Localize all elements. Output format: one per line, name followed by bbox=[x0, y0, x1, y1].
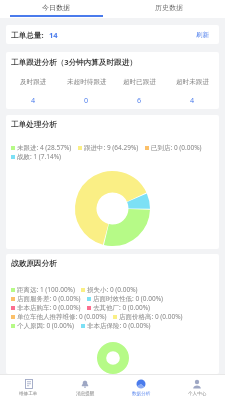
staticText: 个人原因: 0 (0.00%) bbox=[17, 321, 75, 330]
staticText: 战败: 1 (7.14%) bbox=[17, 152, 62, 161]
staticText: 工单跟进分析（3分钟内算及时跟进） bbox=[11, 57, 137, 67]
staticText: 14 bbox=[49, 30, 58, 40]
staticText: 0 bbox=[84, 95, 89, 105]
button[interactable]: 个人中心 bbox=[169, 375, 225, 400]
staticText: 工单处理分析 bbox=[11, 120, 57, 130]
staticText: 已到店: 0 (0.00%) bbox=[151, 143, 202, 152]
staticText: 个人中心 bbox=[188, 391, 207, 397]
staticText: 及时跟进 bbox=[20, 78, 47, 86]
staticText: 数据分析 bbox=[132, 391, 151, 397]
button[interactable]: 消息提醒 bbox=[57, 375, 113, 400]
button[interactable]: 今日数据 bbox=[0, 0, 112, 18]
staticText: 消息提醒 bbox=[76, 391, 95, 397]
staticText: 店面服务差: 0 (0.00%) bbox=[17, 294, 81, 303]
staticText: 4 bbox=[31, 95, 36, 105]
staticText: 维修工单 bbox=[19, 391, 38, 397]
staticText: 历史数据 bbox=[155, 3, 183, 12]
button[interactable]: 刷新 bbox=[194, 29, 212, 41]
staticText: 6 bbox=[137, 95, 142, 105]
staticText: 店面价格高: 0 (0.00%) bbox=[119, 312, 183, 321]
staticText: 今日数据 bbox=[42, 3, 70, 12]
staticText: 跟进中: 9 (64.29%) bbox=[84, 143, 139, 152]
staticText: 单位车他人推荐维修: 0 (0.00%) bbox=[17, 312, 107, 321]
staticText: 去其他厂: 0 (0.00%) bbox=[93, 303, 151, 312]
button[interactable]: 维修工单 bbox=[0, 375, 57, 400]
staticText: 4 bbox=[190, 95, 195, 105]
staticText: 店面时效性低: 0 (0.00%) bbox=[93, 294, 164, 303]
staticText: 非本店保险: 0 (0.00%) bbox=[87, 321, 151, 330]
staticText: 刷新 bbox=[196, 31, 210, 39]
staticText: 损失小: 0 (0.00%) bbox=[87, 285, 138, 294]
button[interactable]: 历史数据 bbox=[112, 0, 225, 18]
staticText: 未超时待跟进 bbox=[67, 78, 107, 86]
staticText: 工单总量: bbox=[11, 30, 44, 40]
staticText: 战败原因分析 bbox=[11, 259, 57, 269]
staticText: 超时已跟进 bbox=[123, 78, 156, 86]
staticText: 未跟进: 4 (28.57%) bbox=[17, 143, 72, 152]
staticText: 超时未跟进 bbox=[176, 78, 209, 86]
staticText: 距离远: 1 (100.00%) bbox=[17, 285, 75, 294]
staticText: 非本店购车: 0 (0.00%) bbox=[17, 303, 81, 312]
button[interactable]: 数据分析 bbox=[113, 375, 169, 400]
